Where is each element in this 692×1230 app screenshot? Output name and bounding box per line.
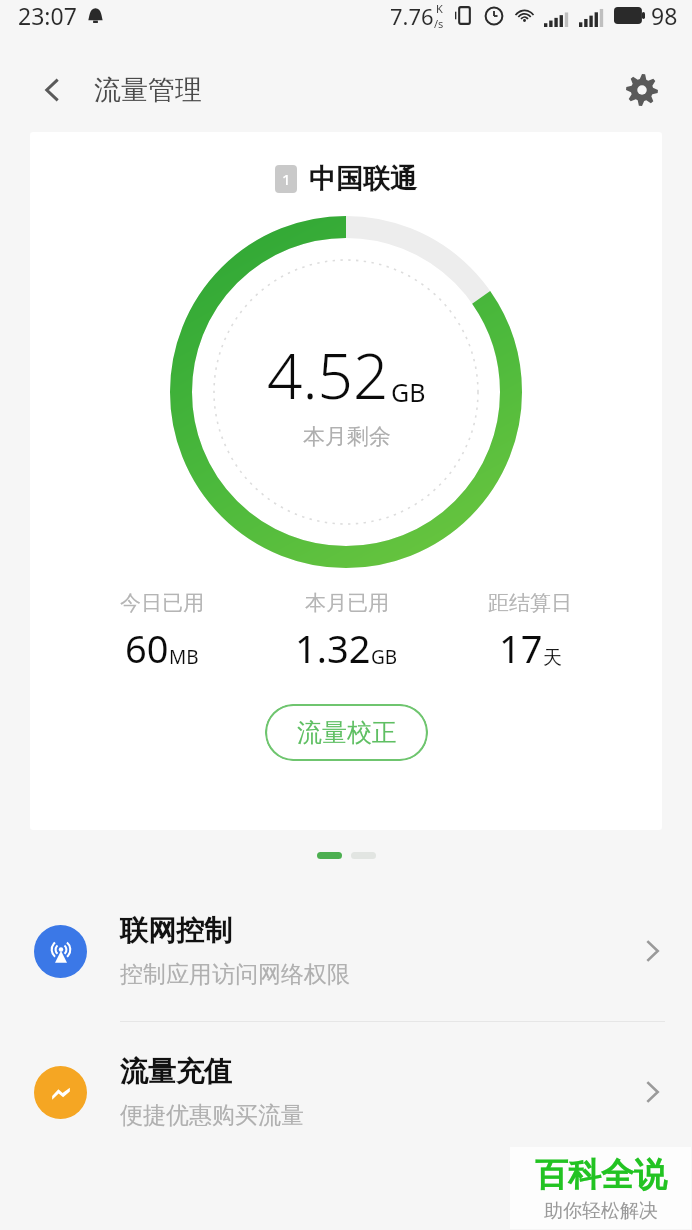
staticText: 4.52 bbox=[267, 333, 389, 417]
staticText: 23:07 bbox=[18, 0, 77, 31]
staticText: 助你轻松解决 bbox=[544, 1199, 658, 1223]
staticText: GB bbox=[371, 644, 398, 670]
staticText: 7.76 bbox=[390, 1, 434, 31]
button[interactable]: 流量校正 bbox=[265, 704, 428, 761]
staticText: K bbox=[436, 1, 443, 16]
staticText: 今日已用 bbox=[120, 590, 204, 616]
staticText: 天 bbox=[543, 646, 562, 670]
staticText: 距结算日 bbox=[488, 590, 572, 616]
staticText: 本月剩余 bbox=[303, 423, 391, 451]
button[interactable]: Settings bbox=[616, 64, 668, 116]
staticText: 中国联通 bbox=[309, 162, 417, 196]
staticText: 联网控制 bbox=[120, 913, 232, 948]
staticText: /s bbox=[434, 16, 444, 31]
staticText: 1.32 bbox=[295, 622, 371, 674]
staticText: MB bbox=[169, 644, 199, 670]
staticText: 60 bbox=[125, 622, 169, 674]
button[interactable]: 联网控制 bbox=[0, 881, 692, 1021]
staticText: 控制应用访问网络权限 bbox=[120, 960, 350, 989]
staticText: 流量校正 bbox=[297, 717, 397, 748]
staticText: 1 bbox=[282, 169, 291, 189]
button[interactable] bbox=[351, 852, 376, 859]
button[interactable] bbox=[317, 852, 342, 859]
staticText: 98 bbox=[651, 0, 678, 31]
button[interactable]: Back bbox=[28, 65, 78, 115]
button[interactable]: 流量充值 bbox=[0, 1022, 692, 1162]
staticText: 17 bbox=[499, 622, 543, 674]
staticText: 流量充值 bbox=[120, 1054, 232, 1089]
staticText: 便捷优惠购买流量 bbox=[120, 1101, 304, 1130]
staticText: 百科全说 bbox=[535, 1154, 667, 1196]
staticText: 本月已用 bbox=[305, 590, 389, 616]
staticText: GB bbox=[391, 375, 426, 409]
staticText: 流量管理 bbox=[94, 73, 202, 107]
